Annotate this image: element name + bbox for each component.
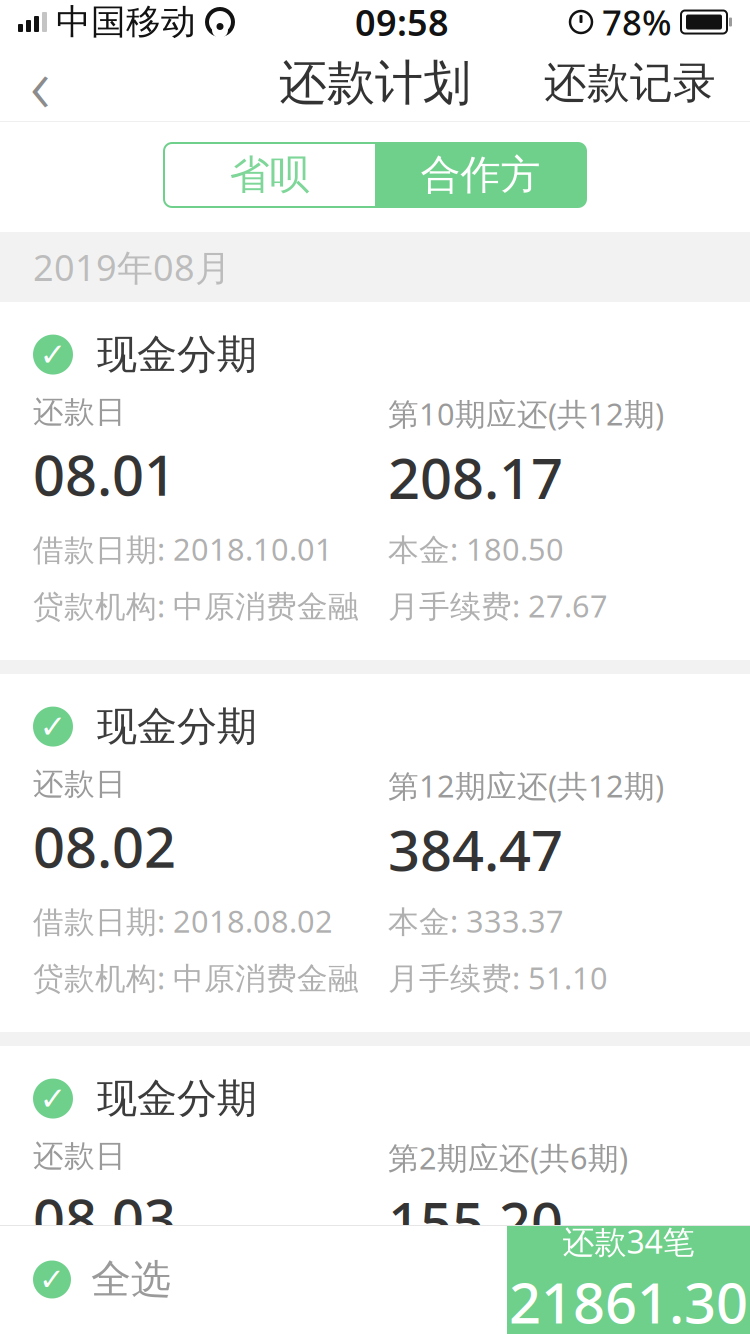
staticText: 还款日 — [33, 765, 126, 803]
staticText: 贷款机构: 中原消费金融 — [33, 585, 359, 626]
staticText: 贷款机构: 中原消费金融 — [33, 957, 359, 998]
staticText: 月手续费: 15.10 — [388, 1329, 608, 1334]
staticText: ✓ — [39, 1080, 66, 1117]
staticText: 2019年08月 — [33, 243, 231, 291]
button[interactable]: ✓ — [0, 674, 750, 1032]
staticText: 还款34笔 — [562, 1220, 694, 1263]
staticText: 还款计划 — [279, 53, 471, 112]
staticText: 08.03 — [33, 1181, 176, 1255]
staticText: 中国移动 — [56, 1, 196, 43]
button[interactable]: 返回 — [0, 44, 80, 122]
staticText: 借款日期: 2018.08.02 — [33, 901, 333, 941]
button[interactable]: 还款34笔 — [507, 1225, 750, 1334]
staticText: 还款日 — [33, 393, 126, 431]
staticText: 09:58 — [355, 0, 449, 46]
staticText: 78% — [602, 0, 672, 45]
staticText: 21861.30 — [509, 1265, 748, 1334]
staticText: 月手续费: 51.10 — [388, 957, 608, 998]
button[interactable]: 还款记录 — [510, 44, 750, 122]
staticText: 还款记录 — [544, 57, 716, 109]
staticText: 省呗 — [229, 150, 309, 199]
staticText: 本金: 180.50 — [388, 529, 564, 569]
staticText: ✓ — [39, 336, 66, 373]
button[interactable]: ✓ — [0, 302, 750, 660]
staticText: 现金分期 — [97, 330, 257, 379]
staticText: 现金分期 — [97, 1074, 257, 1123]
staticText: 月手续费: 27.67 — [388, 585, 608, 626]
staticText: 08.02 — [33, 809, 176, 883]
staticText: 合作方 — [420, 150, 540, 199]
staticText: 借款日期: 2019.06.03 — [33, 1273, 333, 1313]
button[interactable]: ✓ — [0, 1239, 171, 1320]
staticText: ✓ — [39, 1262, 65, 1297]
staticText: 本金: 140.10 — [388, 1273, 564, 1313]
staticText: 第10期应还(共12期) — [388, 393, 664, 434]
staticText: 第12期应还(共12期) — [388, 765, 664, 806]
staticText: ‹ — [30, 32, 50, 134]
staticText: 现金分期 — [97, 702, 257, 751]
staticText: ✓ — [39, 708, 66, 745]
button[interactable]: ✓ — [0, 1046, 750, 1334]
staticText: 全选 — [91, 1255, 171, 1304]
staticText: 还款日 — [33, 1137, 126, 1175]
staticText: 借款日期: 2018.10.01 — [33, 529, 333, 569]
staticText: 208.17 — [388, 440, 563, 514]
staticText: 08.01 — [33, 437, 176, 511]
staticText: 155.20 — [388, 1184, 563, 1258]
staticText: 第2期应还(共6期) — [388, 1137, 628, 1178]
button[interactable]: 合作方 — [375, 143, 586, 207]
button[interactable]: 省呗 — [164, 143, 375, 207]
staticText: 本金: 333.37 — [388, 901, 564, 941]
staticText: 384.47 — [388, 812, 563, 886]
